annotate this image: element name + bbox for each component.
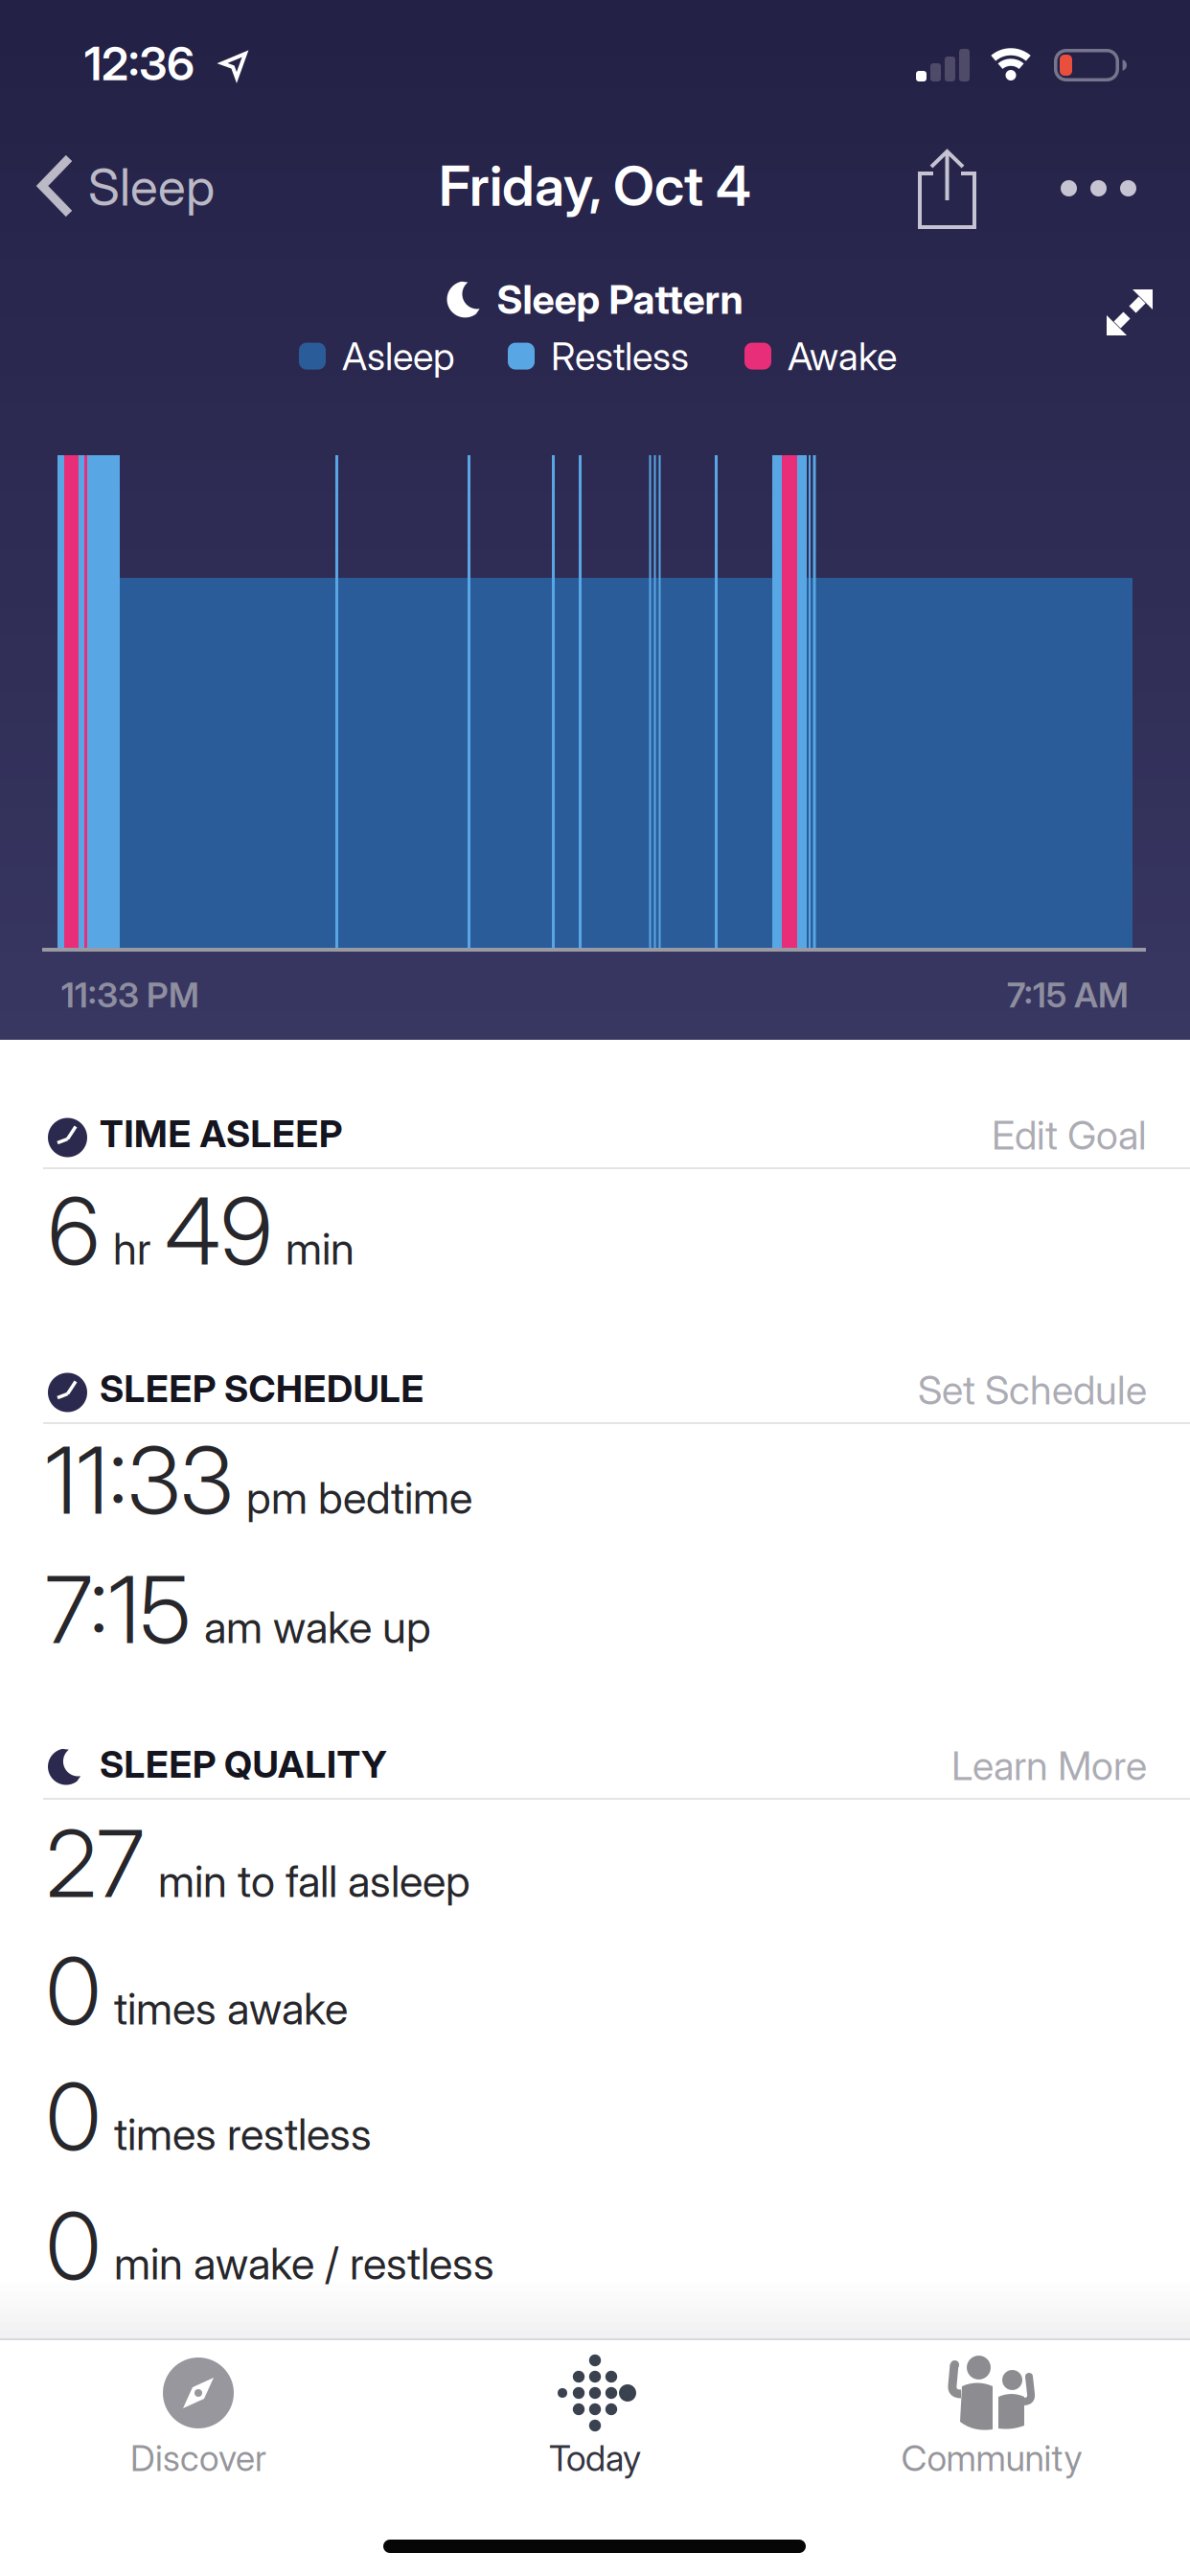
staticText: min [286, 1223, 355, 1274]
staticText: TIME ASLEEP [100, 1112, 342, 1155]
staticText: Friday, Oct 4 [439, 153, 751, 218]
staticText: Discover [130, 2437, 266, 2479]
staticText: times restless [114, 2109, 372, 2160]
staticText: 12:36 [84, 36, 195, 91]
button[interactable]: Back [40, 156, 215, 218]
staticText: 7:15 AM [1007, 975, 1129, 1015]
staticText: Sleep [88, 157, 215, 217]
staticText: 7:15 [45, 1555, 191, 1664]
staticText: 49 [165, 1177, 272, 1285]
staticText: Learn More [951, 1742, 1147, 1789]
staticText: min awake / restless [114, 2238, 494, 2289]
staticText: pm bedtime [246, 1472, 472, 1524]
staticText: 0 [46, 2192, 101, 2300]
staticText: Awake [788, 333, 897, 379]
staticText: 27 [46, 1809, 145, 1918]
staticText: SLEEP SCHEDULE [100, 1367, 424, 1410]
staticText: am wake up [204, 1602, 431, 1653]
button[interactable]: Set Schedule [918, 1367, 1147, 1413]
staticText: 6 [48, 1177, 100, 1285]
staticText: 11:33 [45, 1426, 233, 1535]
button[interactable]: Discover [0, 2356, 397, 2479]
staticText: times awake [114, 1983, 348, 2034]
button[interactable]: Today [397, 2356, 793, 2479]
button[interactable]: Expand chart [1107, 289, 1153, 335]
button[interactable]: Edit Goal [992, 1112, 1147, 1158]
staticText: Sleep Pattern [497, 276, 743, 323]
button[interactable]: More [1061, 180, 1136, 196]
button[interactable]: Learn More [951, 1742, 1147, 1789]
staticText: 0 [46, 1937, 101, 2045]
staticText: Edit Goal [992, 1112, 1147, 1158]
staticText: Today [549, 2437, 641, 2479]
staticText: Set Schedule [918, 1367, 1147, 1413]
staticText: Asleep [342, 333, 455, 379]
staticText: 0 [46, 2062, 101, 2171]
staticText: Community [901, 2437, 1082, 2479]
staticText: hr [113, 1223, 151, 1274]
staticText: SLEEP QUALITY [100, 1742, 387, 1786]
staticText: 11:33 PM [61, 975, 199, 1015]
button[interactable]: Community [793, 2356, 1190, 2479]
staticText: Restless [551, 333, 689, 379]
staticText: min to fall asleep [158, 1856, 470, 1907]
button[interactable]: Share [918, 149, 976, 230]
